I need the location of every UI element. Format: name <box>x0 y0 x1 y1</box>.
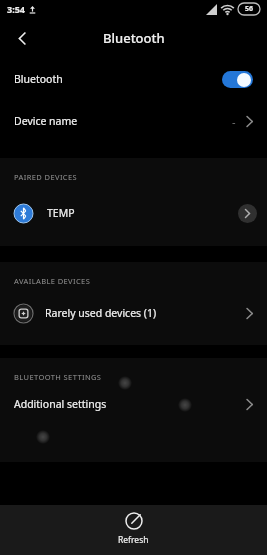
button[interactable]: Device name <box>0 100 267 142</box>
staticText: Bluetooth <box>14 72 63 86</box>
button[interactable]: Bluetooth <box>0 58 267 100</box>
staticText: PAIRED DEVICES <box>14 172 78 182</box>
staticText: Additional settings <box>14 397 107 411</box>
staticText: - <box>232 114 236 129</box>
button[interactable] <box>10 26 34 50</box>
staticText: Rarely used devices (1) <box>45 306 157 320</box>
staticText: AVAILABLE DEVICES <box>14 276 91 286</box>
staticText: Device name <box>14 114 78 128</box>
staticText: BLUETOOTH SETTINGS <box>14 372 102 382</box>
button[interactable]: Refresh <box>0 505 267 555</box>
button[interactable]: TEMP <box>0 186 267 240</box>
staticText: 56 <box>245 4 254 14</box>
staticText: Bluetooth <box>103 29 165 47</box>
button[interactable]: Additional settings <box>0 386 267 422</box>
button[interactable] <box>238 204 257 223</box>
staticText: TEMP <box>47 206 75 220</box>
button[interactable]: Rarely used devices (1) <box>0 290 267 336</box>
staticText: Refresh <box>118 534 149 546</box>
staticText: 3:54 <box>7 3 25 15</box>
